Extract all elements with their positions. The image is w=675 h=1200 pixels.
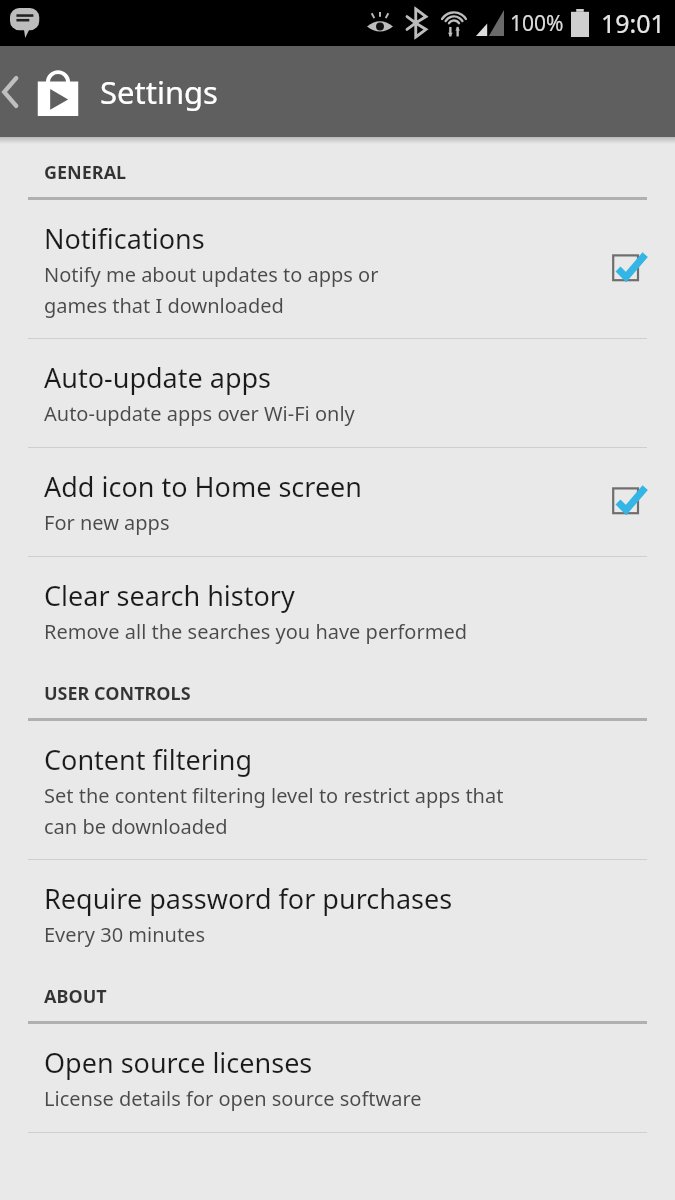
- staticText: For new apps: [44, 509, 170, 536]
- button[interactable]: Require password for purchases: [0, 860, 675, 968]
- staticText: USER CONTROLS: [44, 681, 191, 706]
- staticText: Content filtering: [44, 741, 253, 778]
- staticText: Set the content filtering level to restr…: [44, 782, 504, 839]
- staticText: 19:01: [601, 6, 665, 40]
- button[interactable]: Navigate up: [0, 46, 84, 137]
- button[interactable]: Clear search history: [0, 557, 675, 665]
- staticText: Add icon to Home screen: [44, 468, 363, 505]
- staticText: Remove all the searches you have perform…: [44, 618, 467, 645]
- button[interactable]: Notifications: [0, 200, 675, 338]
- button[interactable]: Toggle setting: [607, 246, 653, 292]
- button[interactable]: Add icon to Home screen: [0, 448, 675, 556]
- staticText: Open source licenses: [44, 1044, 313, 1081]
- staticText: ABOUT: [44, 984, 107, 1009]
- staticText: Require password for purchases: [44, 880, 453, 917]
- button[interactable]: Toggle setting: [607, 479, 653, 525]
- staticText: License details for open source software: [44, 1085, 422, 1112]
- staticText: Auto-update apps over Wi-Fi only: [44, 400, 355, 427]
- staticText: Every 30 minutes: [44, 921, 205, 948]
- staticText: Settings: [100, 71, 218, 113]
- button[interactable]: Content filtering: [0, 721, 675, 859]
- staticText: Notify me about updates to apps or games…: [44, 261, 379, 318]
- staticText: Notifications: [44, 220, 205, 257]
- staticText: Clear search history: [44, 577, 295, 614]
- button[interactable]: Open source licenses: [0, 1024, 675, 1132]
- staticText: 100%: [510, 9, 564, 38]
- staticText: GENERAL: [44, 160, 127, 185]
- button[interactable]: Auto-update apps: [0, 339, 675, 447]
- staticText: Auto-update apps: [44, 359, 272, 396]
